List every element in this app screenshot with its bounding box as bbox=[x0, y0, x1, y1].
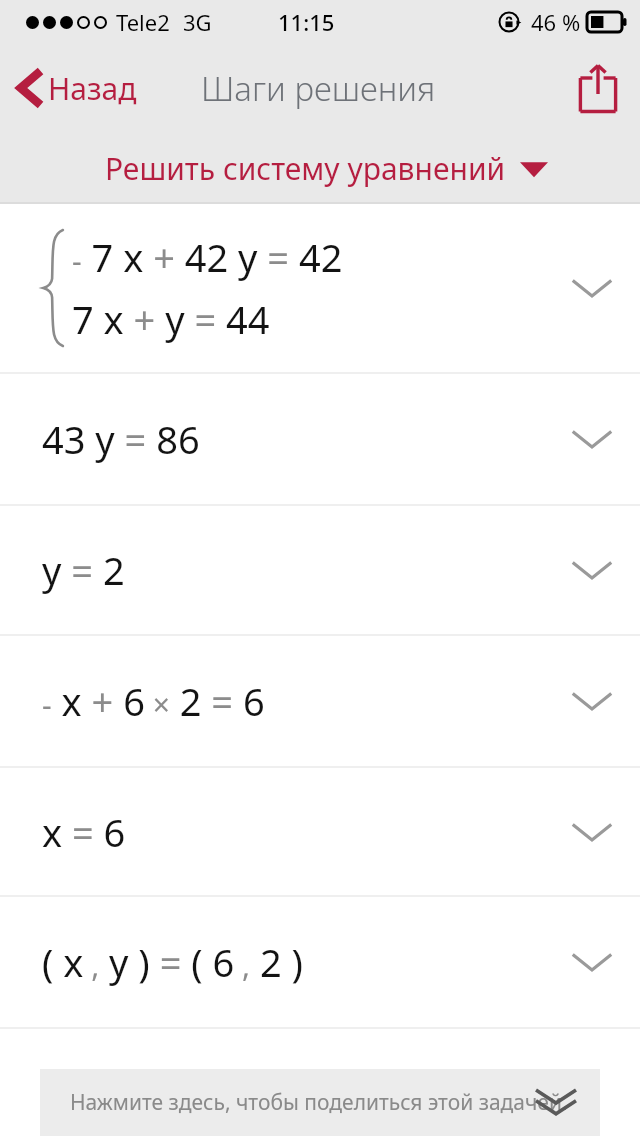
button[interactable]: Expand step bbox=[564, 942, 620, 982]
button[interactable]: 43 y = 86 bbox=[0, 374, 640, 504]
staticText: Шаги решения bbox=[201, 66, 436, 111]
button[interactable]: Expand step bbox=[564, 550, 620, 590]
staticText: 43 y = 86 bbox=[42, 413, 200, 465]
staticText: 3G bbox=[183, 7, 212, 37]
staticText: 46 % bbox=[531, 7, 581, 37]
staticText: 11:15 bbox=[278, 7, 335, 37]
button[interactable]: Expand step bbox=[564, 812, 620, 852]
button[interactable]: Назад bbox=[0, 59, 149, 117]
button[interactable]: x = 6 bbox=[0, 768, 640, 895]
button[interactable]: - 7 x + 42 y = 42 bbox=[0, 204, 640, 372]
button[interactable]: Expand step bbox=[564, 419, 620, 459]
staticText: y = 2 bbox=[42, 544, 125, 596]
button[interactable]: y = 2 bbox=[0, 506, 640, 634]
staticText: Назад bbox=[48, 68, 137, 109]
staticText: x = 6 bbox=[42, 806, 126, 858]
button[interactable]: Нажмите здесь, чтобы поделиться этой зад… bbox=[40, 1069, 600, 1136]
staticText: - 7 x + 42 y = 42 bbox=[72, 231, 343, 283]
button[interactable]: ( x , y ) = ( 6 , 2 ) bbox=[0, 897, 640, 1027]
staticText: Решить систему уравнений bbox=[105, 148, 506, 189]
staticText: Нажмите здесь, чтобы поделиться этой зад… bbox=[70, 1088, 568, 1117]
staticText: ( x , y ) = ( 6 , 2 ) bbox=[42, 936, 304, 988]
button[interactable]: Share bbox=[566, 51, 630, 125]
staticText: - x + 6 × 2 = 6 bbox=[42, 675, 265, 727]
staticText: Tele2 bbox=[116, 7, 170, 37]
button[interactable]: Expand step bbox=[564, 681, 620, 721]
button[interactable]: Решить систему уравнений bbox=[97, 142, 556, 195]
button[interactable]: Expand step bbox=[564, 268, 620, 308]
button[interactable]: - x + 6 × 2 = 6 bbox=[0, 636, 640, 766]
staticText: 7 x + y = 44 bbox=[72, 293, 270, 345]
